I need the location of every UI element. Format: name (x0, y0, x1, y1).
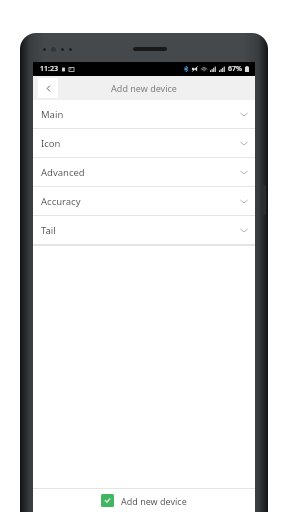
staticText: Accuracy (41, 195, 81, 208)
staticText: 11:23 (40, 64, 58, 74)
staticText: Add new device (111, 82, 177, 94)
button[interactable]: Main (33, 100, 255, 128)
button[interactable]: Tail (33, 216, 255, 244)
button[interactable]: Icon (33, 129, 255, 157)
button[interactable]: Advanced (33, 158, 255, 186)
staticText: Add new device (121, 495, 187, 507)
button[interactable]: Accuracy (33, 187, 255, 215)
staticText: Tail (41, 224, 56, 237)
staticText: Main (41, 108, 64, 121)
staticText: Icon (41, 137, 61, 150)
button[interactable]: Add new device (101, 494, 187, 507)
staticText: 67% (228, 64, 242, 74)
button[interactable]: Back (38, 78, 58, 98)
staticText: Advanced (41, 166, 85, 179)
